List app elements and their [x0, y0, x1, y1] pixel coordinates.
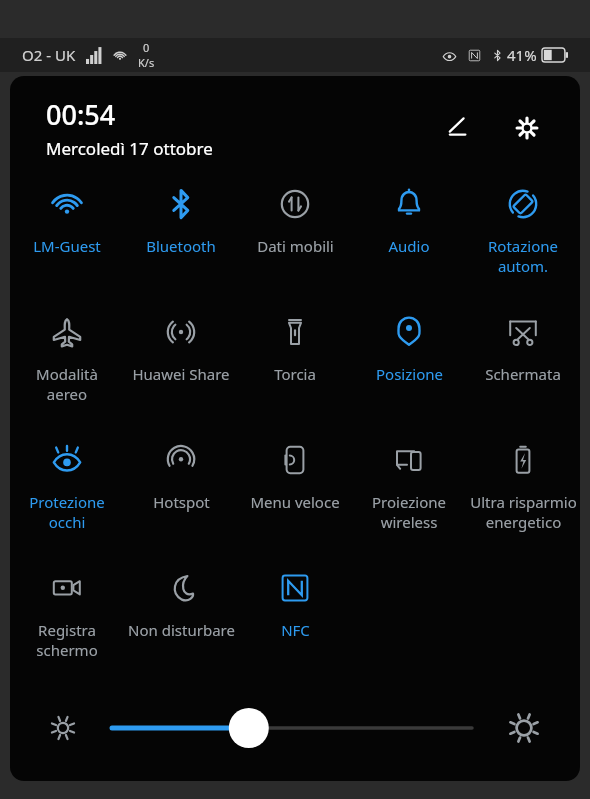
button[interactable]: Ultra risparmio energetico	[466, 426, 580, 554]
button[interactable]: Audio	[352, 170, 466, 298]
button[interactable]: Bluetooth	[124, 170, 238, 298]
staticText: Proiezione wireless	[372, 492, 446, 532]
button[interactable]: Menu veloce	[238, 426, 352, 554]
staticText: Bluetooth	[146, 236, 216, 256]
staticText: Ultra risparmio energetico	[470, 492, 577, 532]
button[interactable]: LM-Guest	[10, 170, 124, 298]
staticText: 00:54	[46, 96, 116, 133]
staticText: Hotspot	[153, 492, 210, 512]
button[interactable]: Dati mobili	[238, 170, 352, 298]
staticText: Schermata	[485, 364, 561, 384]
staticText: Torcia	[274, 364, 316, 384]
button[interactable]: Posizione	[352, 298, 466, 426]
staticText: Rotazione autom.	[488, 236, 558, 276]
button[interactable]: Proiezione wireless	[352, 426, 466, 554]
button[interactable]: Schermata	[466, 298, 580, 426]
staticText: LM-Guest	[33, 236, 101, 256]
staticText: Registra schermo	[36, 620, 98, 660]
button[interactable]: Edit	[434, 105, 480, 151]
staticText: Protezione occhi	[29, 492, 105, 532]
staticText: Non disturbare	[128, 620, 235, 640]
staticText: O2 - UK	[22, 45, 76, 65]
staticText: Huawei Share	[132, 364, 230, 384]
staticText: Mercoledì 17 ottobre	[46, 137, 213, 160]
button[interactable]: Protezione occhi	[10, 426, 124, 554]
button[interactable]: Torcia	[238, 298, 352, 426]
staticText: Audio	[388, 236, 430, 256]
staticText: Menu veloce	[250, 492, 340, 512]
staticText: Modalità aereo	[36, 364, 98, 404]
button[interactable]: Hotspot	[124, 426, 238, 554]
staticText: 0	[143, 40, 150, 55]
staticText: 41%	[507, 45, 537, 65]
button[interactable]: NFC	[238, 554, 352, 682]
button[interactable]: Registra schermo	[10, 554, 124, 682]
staticText: Dati mobili	[257, 236, 334, 256]
button[interactable]: Brightness	[112, 708, 472, 748]
staticText: K/s	[138, 55, 155, 70]
staticText: Posizione	[376, 364, 443, 384]
button[interactable]: Non disturbare	[124, 554, 238, 682]
button[interactable]: Modalità aereo	[10, 298, 124, 426]
button[interactable]: Settings	[504, 105, 550, 151]
staticText: NFC	[281, 620, 310, 640]
button[interactable]: Huawei Share	[124, 298, 238, 426]
button[interactable]: Rotazione autom.	[466, 170, 580, 298]
